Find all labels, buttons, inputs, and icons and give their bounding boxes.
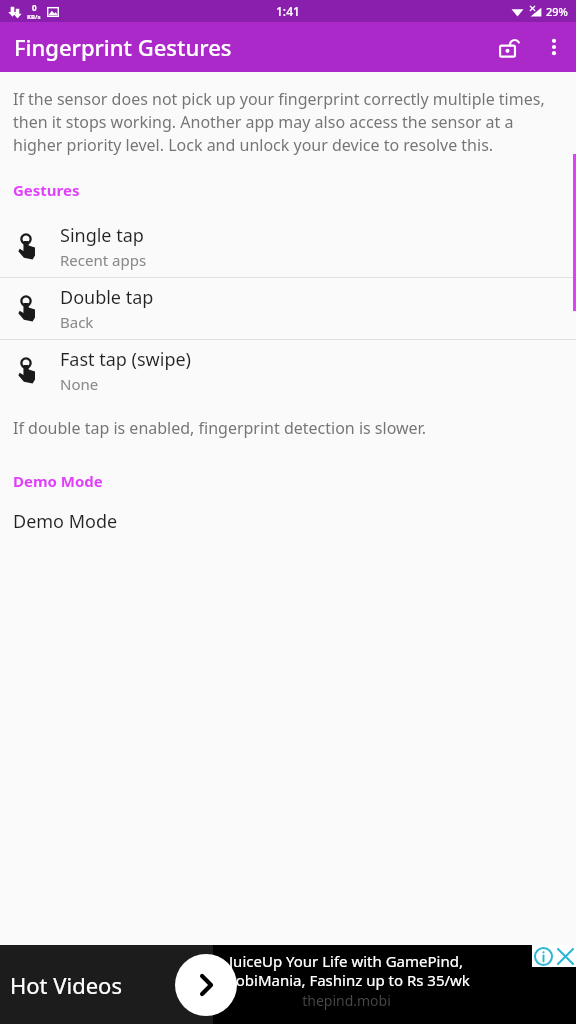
button[interactable]: Unlock bbox=[484, 23, 532, 71]
staticText: Recent apps bbox=[60, 250, 147, 270]
staticText: thepind.mobi bbox=[302, 991, 391, 1010]
staticText: Demo Mode bbox=[13, 471, 103, 491]
staticText: If double tap is enabled, fingerprint de… bbox=[13, 417, 426, 439]
button[interactable]: Double tap bbox=[0, 278, 576, 339]
staticText: Back bbox=[60, 312, 94, 332]
button[interactable]: More options bbox=[532, 25, 576, 69]
button[interactable]: Hot Videos bbox=[0, 945, 576, 1024]
button[interactable]: Ad info bbox=[532, 945, 554, 967]
staticText: KB/s bbox=[27, 13, 41, 21]
button[interactable]: Single tap bbox=[0, 216, 576, 277]
staticText: If the sensor does not pick up your fing… bbox=[13, 88, 563, 156]
staticText: 1:41 bbox=[276, 3, 300, 19]
staticText: JuiceUp Your Life with GamePind, MobiMan… bbox=[196, 951, 496, 990]
staticText: Double tap bbox=[60, 285, 154, 310]
button[interactable]: Fast tap (swipe) bbox=[0, 340, 576, 401]
staticText: Gestures bbox=[13, 180, 80, 200]
staticText: 29% bbox=[546, 4, 568, 19]
staticText: Fingerprint Gestures bbox=[14, 32, 232, 62]
staticText: None bbox=[60, 374, 99, 394]
button[interactable]: Open ad bbox=[175, 954, 237, 1016]
staticText: Hot Videos bbox=[10, 970, 122, 1000]
staticText: 0 bbox=[32, 2, 37, 13]
staticText: Demo Mode bbox=[13, 509, 118, 534]
staticText: Fast tap (swipe) bbox=[60, 347, 192, 372]
button[interactable]: Close ad bbox=[554, 945, 576, 967]
staticText: Single tap bbox=[60, 223, 144, 248]
